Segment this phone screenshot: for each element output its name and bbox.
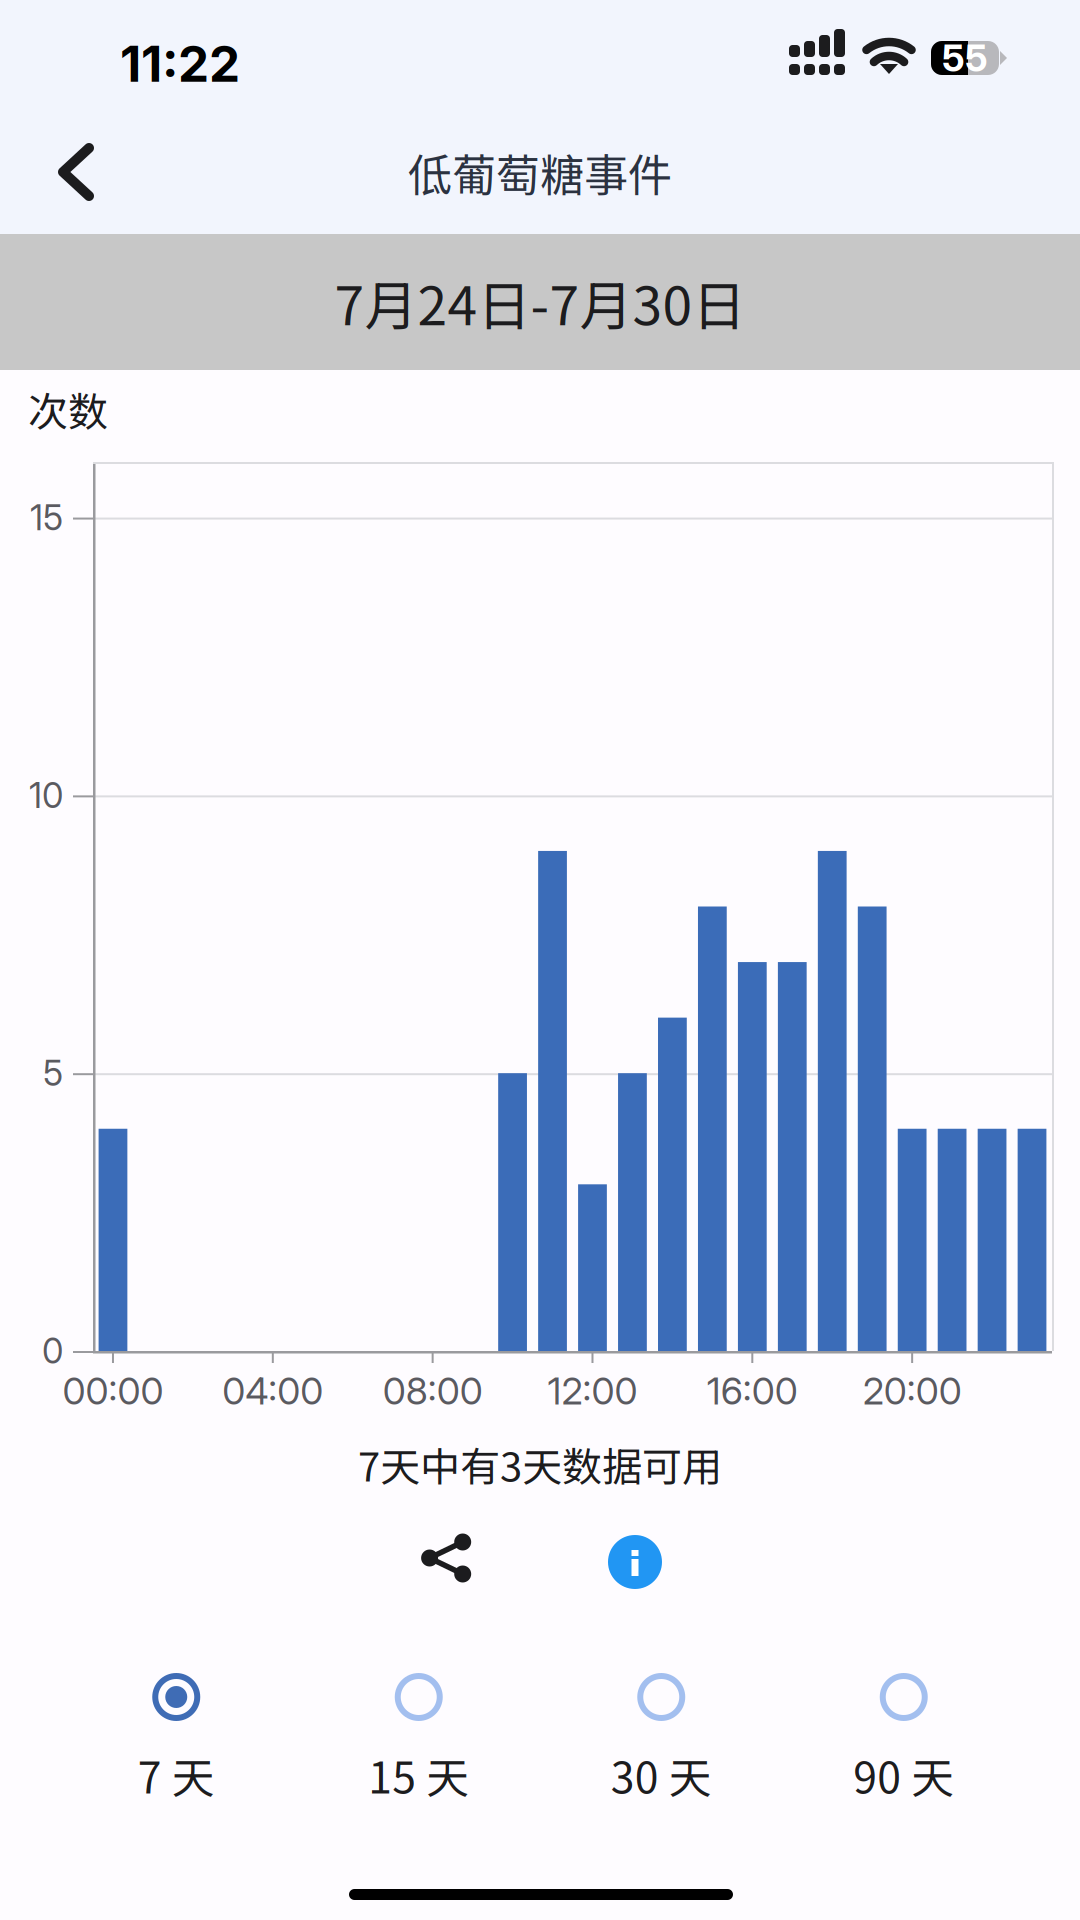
staticText: 10 xyxy=(29,774,63,816)
button[interactable]: 7 天 xyxy=(0,0,1080,1920)
staticText: 00:00 xyxy=(62,1368,163,1414)
staticText: 16:00 xyxy=(707,1368,798,1414)
staticText: 7月24日-7月30日 xyxy=(334,263,745,341)
button[interactable]: Information xyxy=(580,1506,690,1616)
staticText: 次数 xyxy=(28,380,108,438)
staticText: 5 xyxy=(43,1052,63,1094)
staticText: 7天中有3天数据可用 xyxy=(358,1435,722,1493)
button[interactable]: Share xyxy=(388,1502,498,1612)
staticText: 15 天 xyxy=(368,1744,469,1806)
staticText: 12:00 xyxy=(547,1368,637,1414)
staticText: 08:00 xyxy=(383,1368,483,1414)
staticText: 低葡萄糖事件 xyxy=(408,140,672,204)
staticText: 20:00 xyxy=(863,1368,962,1414)
button[interactable]: 30 天 xyxy=(0,0,1080,1920)
staticText: 30 天 xyxy=(611,1744,712,1806)
button[interactable]: Back xyxy=(0,110,124,234)
staticText: 7 天 xyxy=(138,1744,215,1806)
staticText: 15 xyxy=(30,497,63,538)
staticText: 90 天 xyxy=(853,1744,954,1806)
staticText: 0 xyxy=(42,1330,63,1372)
staticText: 04:00 xyxy=(222,1368,323,1414)
button[interactable]: 15 天 xyxy=(0,0,1080,1920)
staticText: 55 xyxy=(942,35,988,81)
staticText: 11:22 xyxy=(120,34,240,94)
button[interactable]: 90 天 xyxy=(0,0,1080,1920)
